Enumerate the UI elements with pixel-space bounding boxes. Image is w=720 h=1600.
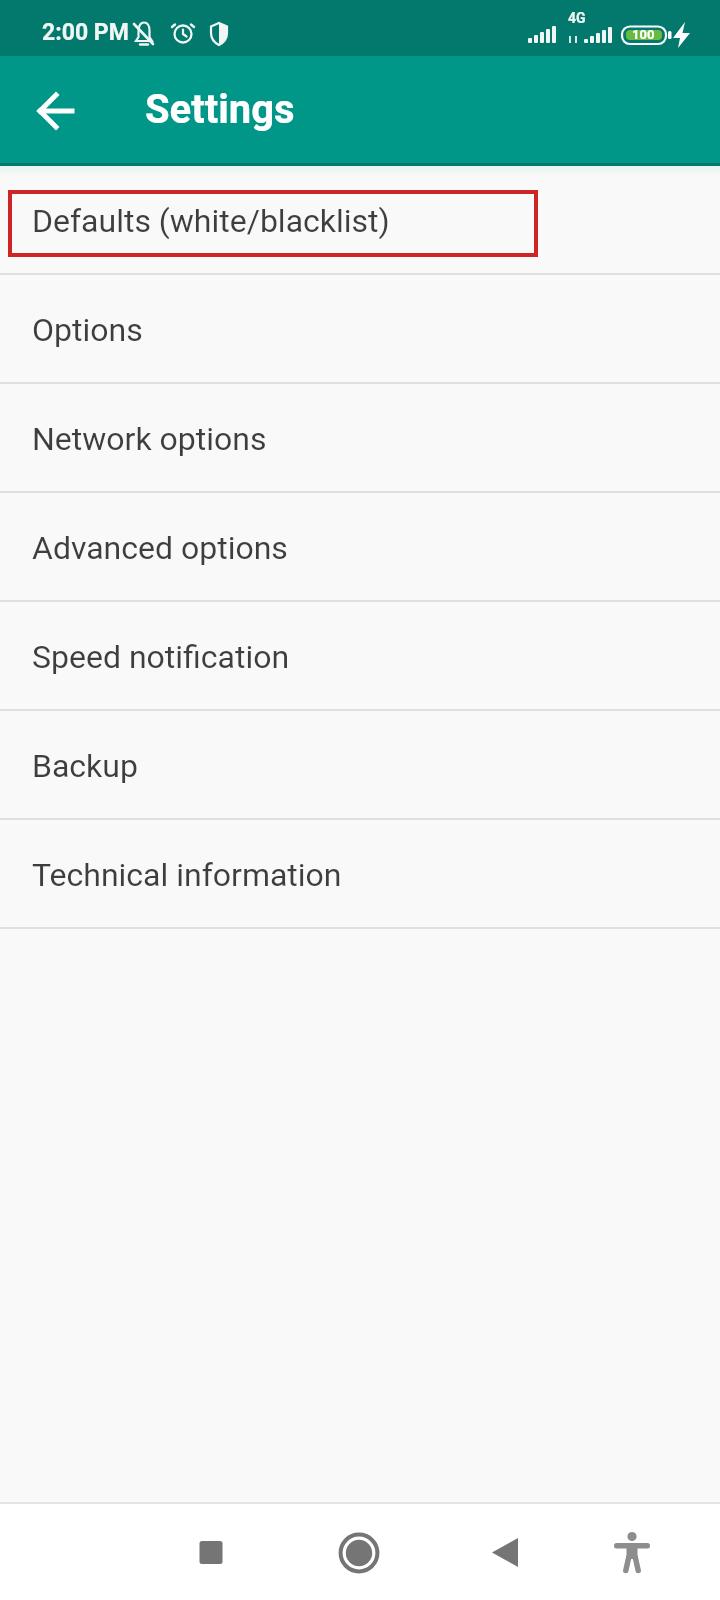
staticText: Defaults (white/blacklist) <box>32 202 390 240</box>
staticText: 100 <box>632 27 655 42</box>
staticText: 2:00 PM <box>42 19 129 46</box>
staticText: Network options <box>32 420 267 458</box>
staticText: Options <box>32 311 143 349</box>
staticText: Settings <box>145 86 295 133</box>
staticText: 4G <box>568 10 586 26</box>
staticText: Advanced options <box>32 529 288 567</box>
staticText: Technical information <box>32 856 342 894</box>
staticText: Speed notification <box>32 638 290 676</box>
staticText: Backup <box>32 747 138 785</box>
